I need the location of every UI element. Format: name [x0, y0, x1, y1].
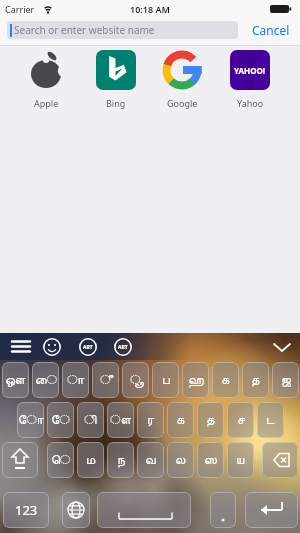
button[interactable]	[210, 492, 236, 528]
button[interactable]	[270, 338, 294, 356]
staticText: ோ	[18, 414, 44, 427]
staticText: ௗ	[110, 414, 131, 427]
button[interactable]: ீ	[92, 362, 119, 398]
button[interactable]: க	[212, 362, 239, 398]
button[interactable]: ா	[62, 362, 89, 398]
staticText: ி	[84, 414, 97, 427]
button[interactable]	[162, 50, 202, 90]
staticText: 10:18 AM	[130, 3, 170, 15]
staticText: ஜ	[281, 374, 291, 387]
button[interactable]	[97, 492, 191, 528]
staticText: Cancel	[252, 22, 290, 38]
button[interactable]: ஸ	[197, 442, 224, 478]
button[interactable]: வ	[137, 442, 164, 478]
staticText: ஔ	[5, 374, 26, 387]
staticText: வ	[145, 454, 156, 467]
staticText: Bing	[106, 97, 126, 109]
button[interactable]	[62, 492, 90, 528]
button[interactable]: ூ	[122, 362, 149, 398]
staticText: ீ	[100, 374, 111, 387]
staticText: Apple	[34, 97, 59, 109]
button[interactable]: ோ	[17, 402, 44, 438]
button[interactable]: ௗ	[107, 402, 134, 438]
button[interactable]: ஜ	[272, 362, 299, 398]
staticText: ஸ	[204, 454, 217, 467]
button[interactable]: 123	[3, 492, 49, 528]
staticText: த	[251, 374, 260, 387]
staticText: ல	[175, 454, 186, 467]
staticText: ச	[237, 414, 245, 427]
staticText: ை	[35, 374, 57, 387]
staticText: ART	[83, 344, 93, 351]
button[interactable]: ே	[47, 402, 74, 438]
staticText: ம	[86, 454, 96, 467]
button[interactable]: ை	[32, 362, 59, 398]
button[interactable]: YAHOO!	[230, 50, 270, 90]
button[interactable]	[2, 442, 38, 478]
button[interactable]: ஔ	[2, 362, 29, 398]
button[interactable]: ெ	[47, 442, 74, 478]
staticText: 123	[15, 501, 38, 519]
button[interactable]: ம	[77, 442, 104, 478]
button[interactable]	[42, 337, 62, 357]
staticText: ா	[67, 374, 84, 387]
staticText: ூ	[130, 374, 141, 387]
staticText: த	[206, 414, 215, 427]
staticText: ெ	[51, 454, 71, 467]
button[interactable]: Cancel	[246, 21, 296, 39]
button[interactable]: த	[242, 362, 269, 398]
button[interactable]: ப	[152, 362, 179, 398]
staticText: ப	[162, 374, 170, 387]
staticText: Search or enter website name	[14, 23, 155, 37]
button[interactable]: க	[167, 402, 194, 438]
button[interactable]	[8, 338, 36, 356]
staticText: Google	[167, 97, 198, 109]
staticText: ட	[266, 414, 275, 427]
staticText: ே	[51, 414, 70, 427]
button[interactable]	[96, 50, 136, 90]
button[interactable]: ய	[227, 442, 254, 478]
staticText: ர	[147, 414, 155, 427]
button[interactable]: ஹ	[182, 362, 209, 398]
button[interactable]	[26, 50, 66, 90]
button[interactable]: ர	[137, 402, 164, 438]
staticText: Yahoo	[237, 97, 264, 109]
button[interactable]: ART	[78, 337, 98, 357]
button[interactable]	[245, 492, 298, 528]
staticText: க	[176, 414, 185, 427]
button[interactable]: Search or enter website name	[7, 21, 238, 39]
button[interactable]: ச	[227, 402, 254, 438]
button[interactable]: ந	[107, 442, 134, 478]
button[interactable]: ART	[113, 337, 133, 357]
button[interactable]: ட	[257, 402, 284, 438]
staticText: YAHOO!	[234, 65, 266, 76]
staticText: ஹ	[188, 374, 204, 387]
staticText: Carrier	[5, 3, 35, 15]
staticText: ந	[117, 454, 125, 467]
button[interactable]	[262, 442, 298, 478]
staticText: ART	[118, 344, 128, 351]
button[interactable]: ல	[167, 442, 194, 478]
staticText: க	[221, 374, 230, 387]
button[interactable]: ி	[77, 402, 104, 438]
button[interactable]: த	[197, 402, 224, 438]
staticText: ய	[236, 454, 245, 467]
